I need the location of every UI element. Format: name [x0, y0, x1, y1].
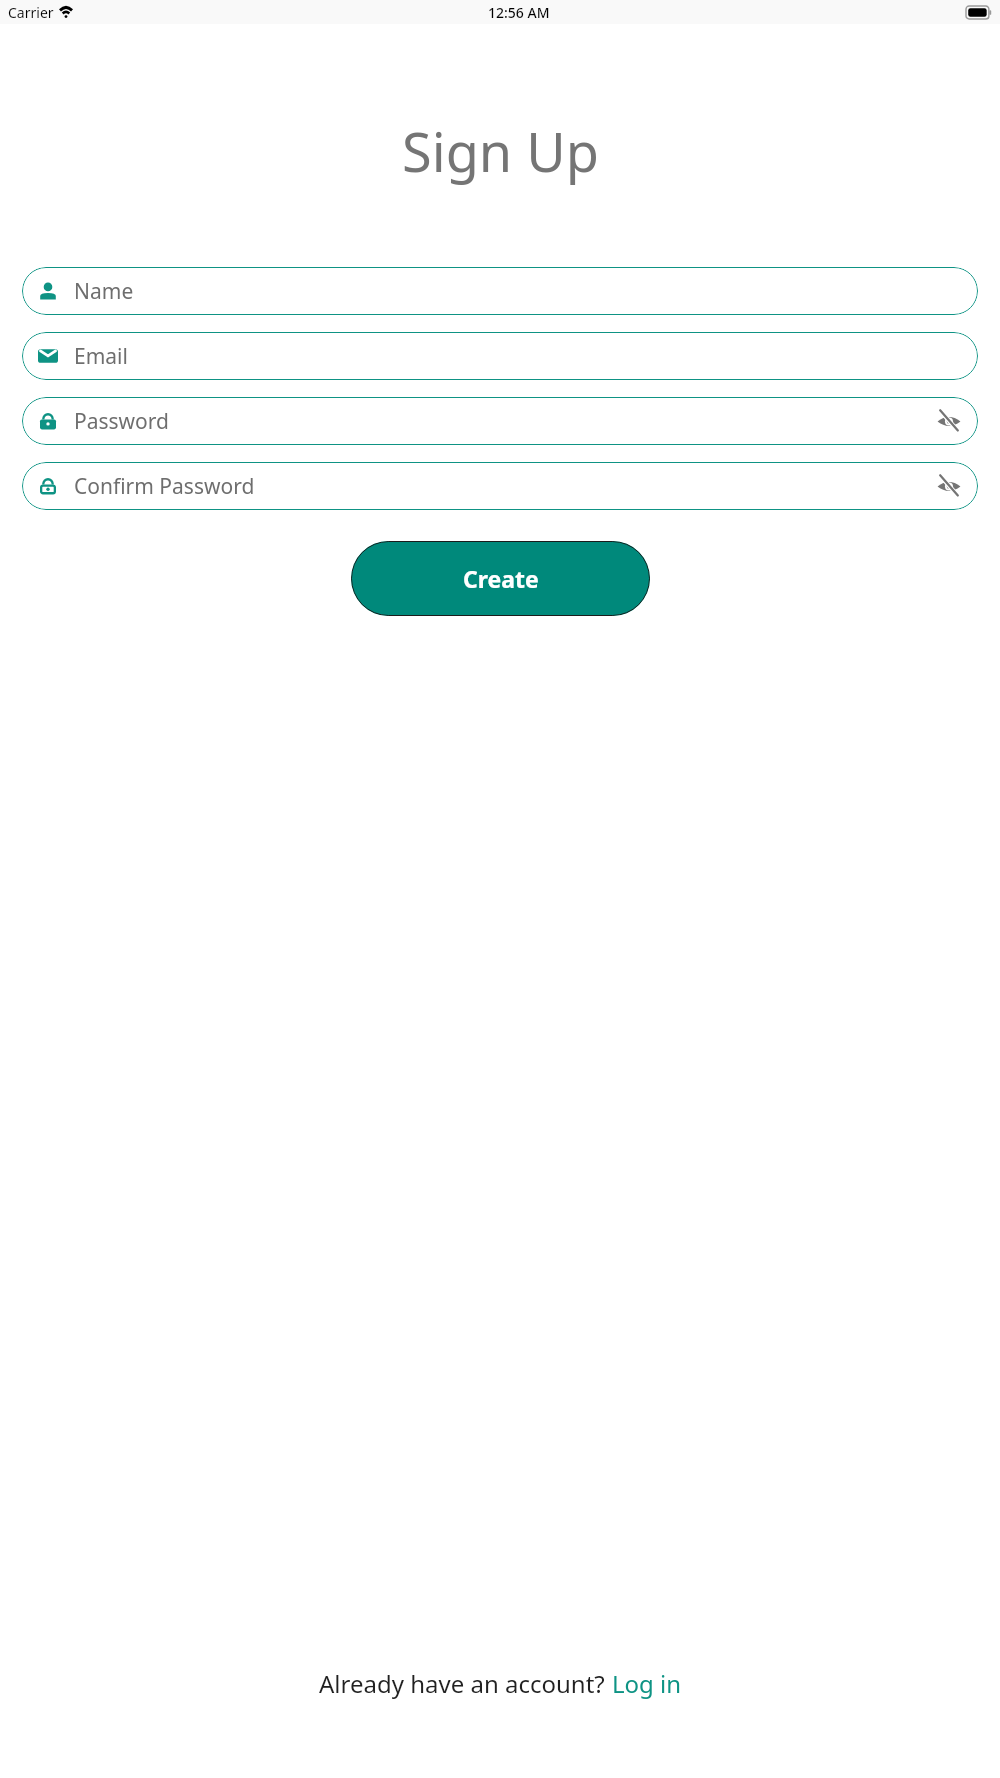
button[interactable]: Confirm Password [22, 462, 978, 510]
button[interactable]: Log in [612, 1667, 682, 1700]
staticText: Carrier [8, 3, 54, 22]
staticText: Already have an account? [319, 1667, 612, 1700]
staticText: Confirm Password [74, 472, 936, 501]
button[interactable]: Toggle password visibility [936, 408, 962, 434]
staticText: 12:56 AM [488, 3, 550, 22]
staticText: Password [74, 407, 936, 436]
staticText: Name [74, 277, 962, 306]
button[interactable]: Create [351, 541, 650, 616]
button[interactable]: Toggle password visibility [936, 473, 962, 499]
button[interactable]: Name [22, 267, 978, 315]
staticText: Email [74, 342, 962, 371]
staticText: Sign Up [402, 114, 599, 188]
button[interactable]: Password [22, 397, 978, 445]
button[interactable]: Email [22, 332, 978, 380]
staticText: Create [463, 563, 539, 594]
staticText: Log in [612, 1667, 682, 1700]
